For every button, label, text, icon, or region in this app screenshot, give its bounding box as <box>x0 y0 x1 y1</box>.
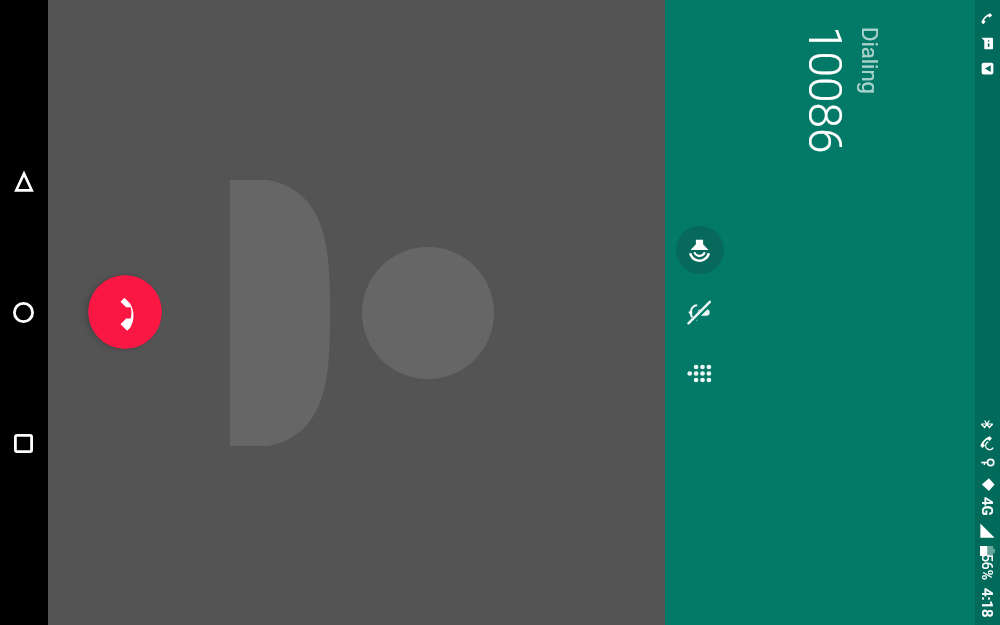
button[interactable]: Recents <box>0 419 48 467</box>
staticText: 4:18 <box>978 588 996 618</box>
button[interactable]: Speaker <box>676 226 724 274</box>
staticText: 10086 <box>798 26 852 154</box>
button[interactable]: Back <box>0 158 48 206</box>
staticText: 56% <box>979 554 995 580</box>
button[interactable]: Dialpad <box>676 349 724 397</box>
button[interactable]: Mute <box>676 288 724 336</box>
staticText: 4G <box>978 497 996 516</box>
button[interactable]: Home <box>0 288 48 336</box>
button[interactable]: End call <box>88 275 162 349</box>
staticText: Dialing <box>856 27 882 94</box>
